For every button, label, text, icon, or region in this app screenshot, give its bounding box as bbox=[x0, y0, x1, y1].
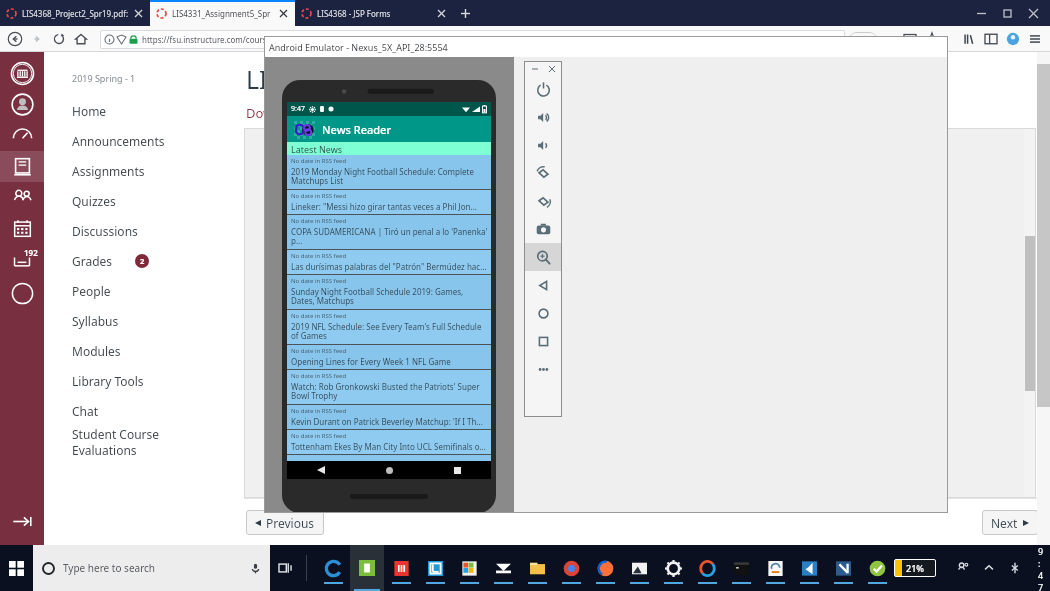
button[interactable]: Home bbox=[355, 461, 423, 479]
button[interactable]: Maximize bbox=[994, 1, 1020, 25]
button[interactable]: Reader view bbox=[899, 28, 921, 50]
button[interactable]: Zoom bbox=[524, 243, 562, 271]
button[interactable]: Close bbox=[1020, 1, 1046, 25]
button[interactable]: Modules bbox=[72, 336, 234, 366]
button[interactable]: Close tab bbox=[277, 7, 289, 19]
button[interactable]: Power bbox=[524, 75, 562, 103]
button[interactable]: No date in RSS feed bbox=[287, 430, 491, 454]
button[interactable]: No date in RSS feed bbox=[287, 370, 491, 404]
button[interactable]: Home bbox=[524, 299, 562, 327]
button[interactable]: No date in RSS feed bbox=[287, 215, 491, 249]
button[interactable]: Back bbox=[287, 461, 355, 479]
button[interactable]: Type here to search bbox=[33, 545, 270, 591]
button[interactable]: Dashboard bbox=[0, 120, 44, 151]
button[interactable]: Next bbox=[982, 510, 1038, 535]
button[interactable]: Android Studio bbox=[690, 545, 724, 591]
button[interactable]: Library bbox=[958, 28, 980, 50]
button[interactable]: Home bbox=[72, 96, 234, 126]
button[interactable]: Forward bbox=[26, 28, 48, 50]
button[interactable]: Emulator app bbox=[350, 545, 384, 591]
staticText: 120% bbox=[854, 34, 872, 44]
button[interactable]: Menu bbox=[1024, 28, 1046, 50]
button[interactable]: Back bbox=[524, 271, 562, 299]
button[interactable]: Inbox bbox=[0, 244, 44, 278]
button[interactable]: Page actions bbox=[877, 28, 899, 50]
button[interactable]: Adobe Acrobat bbox=[384, 545, 418, 591]
button[interactable]: Volume up bbox=[524, 103, 562, 131]
button[interactable]: LIS4368_Project2_Spr19.pdf: (L bbox=[0, 0, 150, 26]
button[interactable]: Rotate left bbox=[524, 159, 562, 187]
button[interactable]: No date in RSS feed bbox=[287, 275, 491, 309]
button[interactable]: Start bbox=[0, 545, 33, 591]
button[interactable]: New tab bbox=[453, 0, 477, 26]
button[interactable]: Syllabus bbox=[72, 306, 234, 336]
button[interactable]: LIS4331_Assignment5_Spr19.pd bbox=[150, 0, 295, 26]
button[interactable]: Home bbox=[70, 28, 92, 50]
button[interactable]: Close tab bbox=[132, 7, 144, 19]
button[interactable]: 120% bbox=[849, 32, 877, 46]
button[interactable]: FSU bbox=[0, 58, 44, 89]
button[interactable]: Recents bbox=[423, 461, 491, 479]
button[interactable]: Close panel bbox=[546, 63, 557, 74]
button[interactable]: Chrome bbox=[554, 545, 588, 591]
button[interactable]: No date in RSS feed bbox=[287, 345, 491, 369]
button[interactable]: Show hidden icons bbox=[976, 555, 1002, 581]
button[interactable]: Screenshot bbox=[524, 215, 562, 243]
button[interactable]: No date in RSS feed bbox=[287, 250, 491, 274]
staticText: Kevin Durant on Patrick Beverley Matchup… bbox=[291, 416, 483, 427]
button[interactable]: People bbox=[72, 276, 234, 306]
button[interactable]: Volume down bbox=[524, 131, 562, 159]
button[interactable]: People bbox=[950, 555, 976, 581]
button[interactable]: Groups bbox=[0, 182, 44, 213]
button[interactable]: Task view bbox=[270, 545, 302, 591]
button[interactable]: More bbox=[524, 355, 562, 383]
button[interactable]: Grades bbox=[72, 246, 234, 276]
button[interactable]: Command Prompt bbox=[724, 545, 758, 591]
button[interactable]: Minimize bbox=[968, 1, 994, 25]
button[interactable]: Student Course bbox=[72, 426, 234, 458]
button[interactable]: Collapse menu bbox=[0, 506, 44, 537]
button[interactable]: Firefox bbox=[588, 545, 622, 591]
button[interactable]: Reload bbox=[48, 28, 70, 50]
button[interactable]: Calendar bbox=[0, 213, 44, 244]
button[interactable]: Rotate right bbox=[524, 187, 562, 215]
button[interactable]: Overview bbox=[524, 327, 562, 355]
button[interactable]: No date in RSS feed bbox=[287, 155, 491, 189]
button[interactable]: Account bbox=[1002, 28, 1024, 50]
button[interactable]: Close tab bbox=[435, 7, 447, 19]
button[interactable]: Bookmark bbox=[921, 28, 943, 50]
button[interactable]: Chat bbox=[72, 396, 234, 426]
button[interactable]: Announcements bbox=[72, 126, 234, 156]
button[interactable]: Microsoft Edge bbox=[316, 545, 350, 591]
button[interactable]: Visual Studio bbox=[826, 545, 860, 591]
staticText: 9:47 PM bbox=[1038, 545, 1044, 591]
button[interactable]: https://fsu.instructure.com/courses/8559… bbox=[100, 30, 845, 49]
button[interactable]: Microsoft Store bbox=[452, 545, 486, 591]
button[interactable]: Help bbox=[0, 278, 44, 309]
button[interactable]: Library Tools bbox=[72, 366, 234, 396]
button[interactable]: File Explorer bbox=[520, 545, 554, 591]
button[interactable]: Previous bbox=[246, 510, 324, 535]
button[interactable]: App logo bbox=[294, 121, 315, 138]
button[interactable]: Sidebar bbox=[980, 28, 1002, 50]
button[interactable]: LIS4368 - JSP Forms bbox=[295, 0, 453, 26]
button[interactable]: Discussions bbox=[72, 216, 234, 246]
button[interactable]: No date in RSS feed bbox=[287, 405, 491, 429]
button[interactable]: Bluetooth bbox=[1002, 555, 1028, 581]
button[interactable]: Mail bbox=[486, 545, 520, 591]
button[interactable]: Minimize panel bbox=[529, 63, 540, 74]
button[interactable]: Photos bbox=[622, 545, 656, 591]
button[interactable]: Antivirus bbox=[860, 545, 894, 591]
button[interactable]: Quizzes bbox=[72, 186, 234, 216]
button[interactable]: No date in RSS feed bbox=[287, 310, 491, 344]
button[interactable]: Account bbox=[0, 89, 44, 120]
button[interactable]: Assignments bbox=[72, 156, 234, 186]
button[interactable]: Settings bbox=[656, 545, 690, 591]
button[interactable]: 9:47 PM bbox=[1032, 545, 1050, 591]
button[interactable]: No date in RSS feed bbox=[287, 190, 491, 214]
button[interactable]: Courses bbox=[0, 151, 44, 182]
button[interactable]: VS Code bbox=[792, 545, 826, 591]
button[interactable]: Back bbox=[4, 28, 26, 50]
button[interactable]: Java bbox=[758, 545, 792, 591]
button[interactable]: LockDown Browser bbox=[418, 545, 452, 591]
